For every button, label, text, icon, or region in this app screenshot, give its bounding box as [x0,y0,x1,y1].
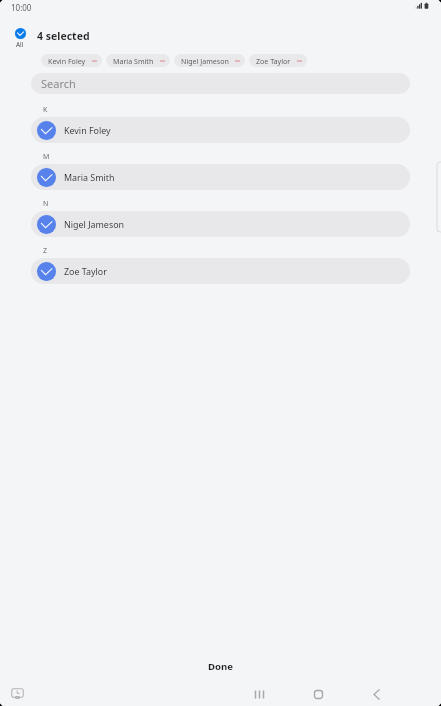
staticText: Nigel Jameson [181,56,229,66]
staticText: Maria Smith [113,56,154,66]
button[interactable]: Nigel Jameson [31,211,410,237]
button[interactable]: Home [307,684,330,704]
button[interactable]: Back [365,684,388,704]
staticText: M [43,152,50,162]
button[interactable]: Zoe Taylor [249,54,307,67]
staticText: Zoe Taylor [256,56,291,66]
button[interactable]: Search [31,73,410,94]
staticText: Z [43,246,48,256]
staticText: Maria Smith [64,171,115,183]
staticText: Zoe Taylor [64,265,107,277]
staticText: 10:00 [11,2,32,13]
staticText: All [16,40,24,49]
button[interactable]: Kevin Foley [31,117,410,143]
button[interactable]: Kevin Foley [41,54,102,67]
button[interactable]: Switch keyboard [9,685,25,701]
staticText: K [43,105,48,115]
staticText: 4 selected [37,29,90,43]
button[interactable]: Nigel Jameson [174,54,245,67]
button[interactable]: Select all [11,28,29,49]
button[interactable]: Maria Smith [31,164,410,190]
staticText: Done [208,660,233,673]
button[interactable]: Done [0,652,441,680]
staticText: N [43,199,49,209]
staticText: Kevin Foley [48,56,86,66]
button[interactable]: Zoe Taylor [31,258,410,284]
staticText: Kevin Foley [64,124,111,136]
staticText: Nigel Jameson [64,218,125,230]
staticText: Search [41,76,76,91]
button[interactable]: Recent apps [248,684,271,704]
button[interactable]: Maria Smith [106,54,170,67]
